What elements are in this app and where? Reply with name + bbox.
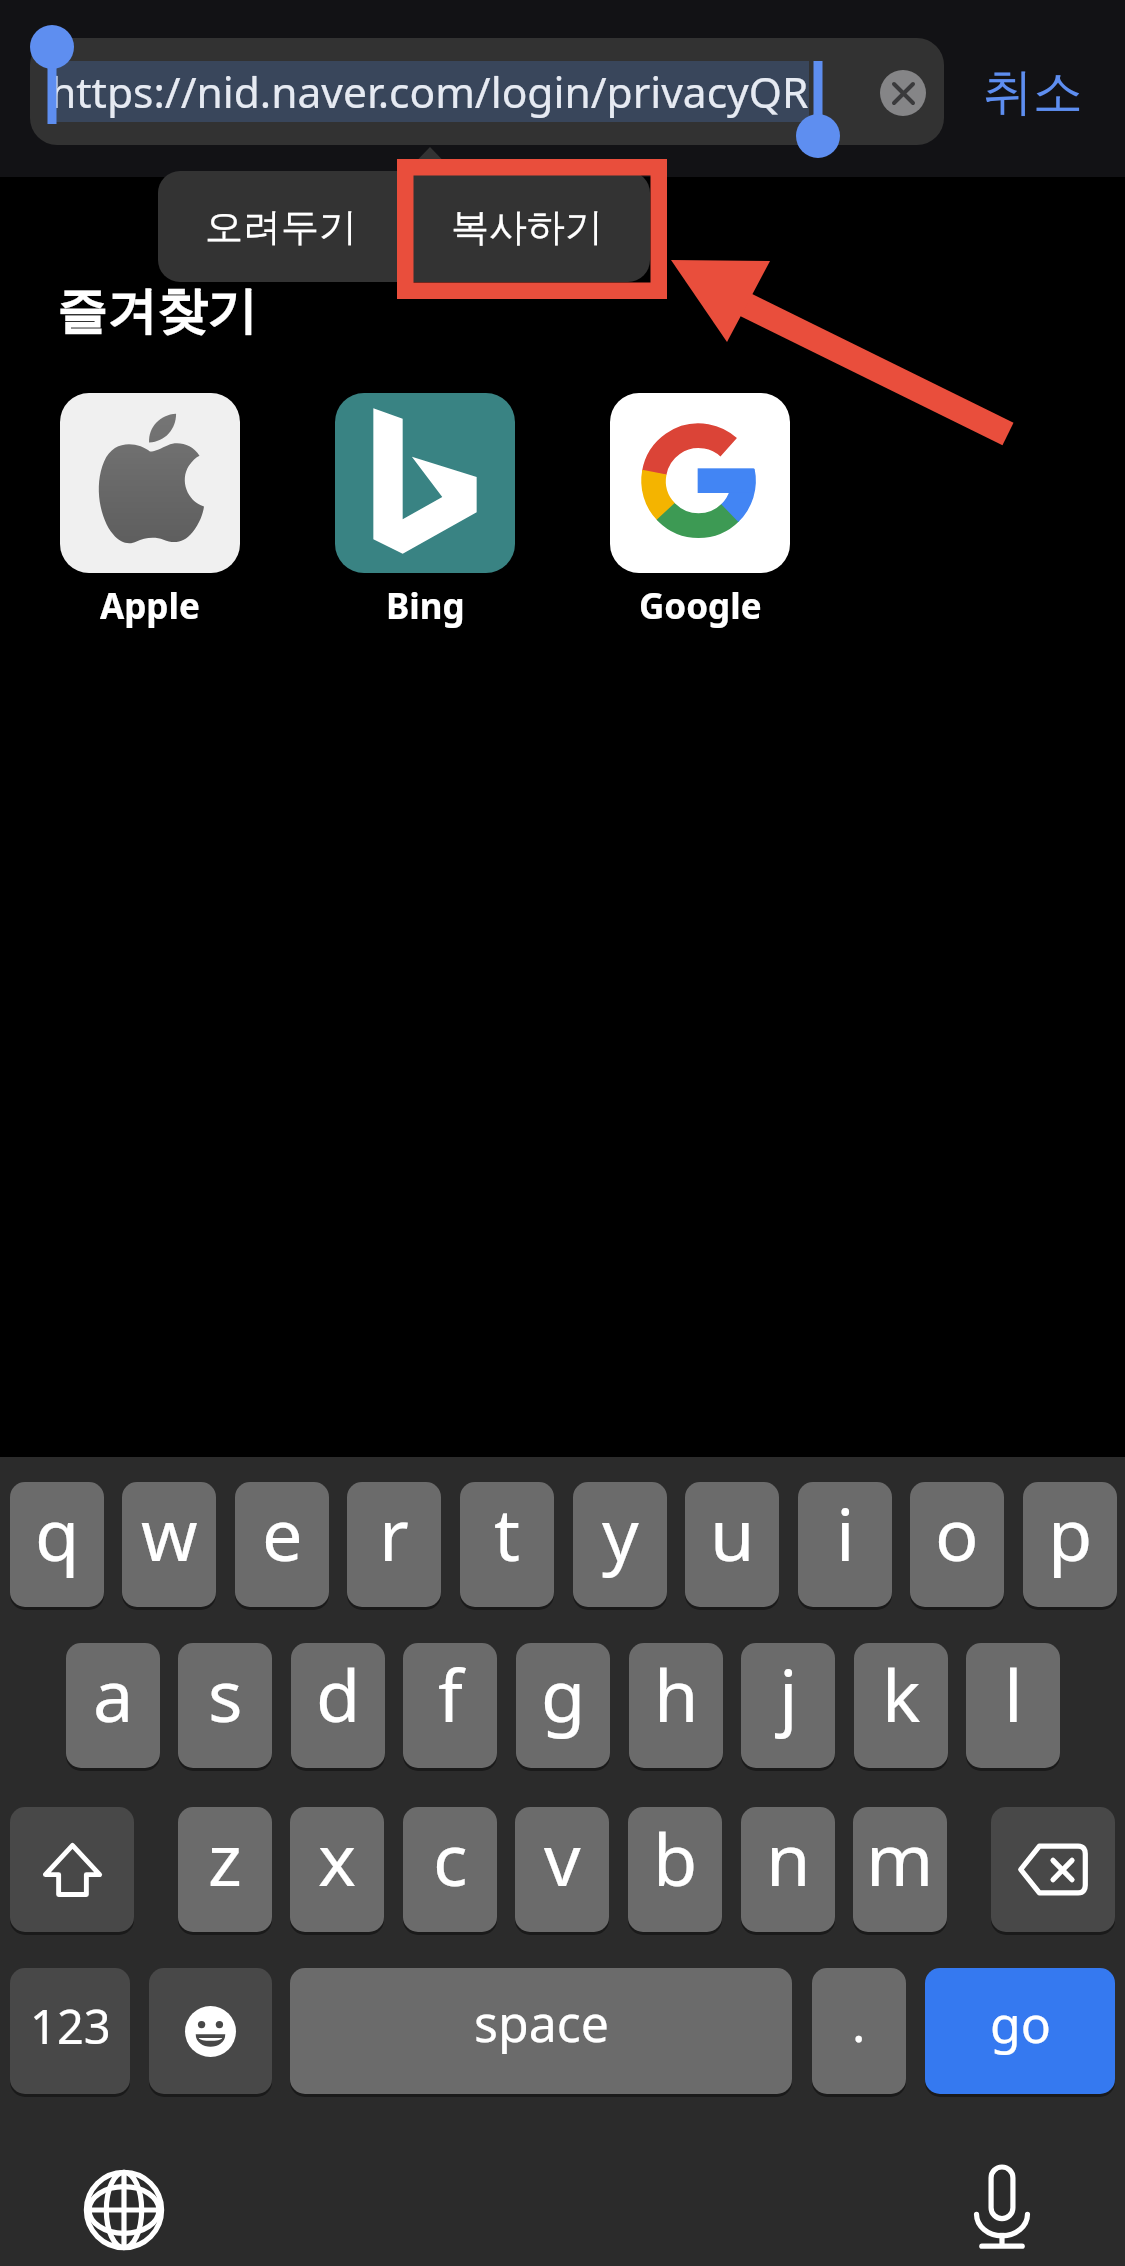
- staticText: space: [474, 1989, 609, 2057]
- staticText: 오려두기: [205, 203, 357, 251]
- button[interactable]: 취소: [982, 58, 1084, 126]
- staticText: 즐겨찾기: [57, 280, 257, 343]
- staticText: u: [710, 1484, 755, 1582]
- staticText: g: [541, 1645, 586, 1743]
- staticText: go: [990, 1990, 1051, 2058]
- button[interactable]: https://nid.naver.com/login/privacyQR: [30, 38, 944, 145]
- staticText: l: [1004, 1645, 1023, 1743]
- button[interactable]: m: [853, 1807, 947, 1932]
- staticText: w: [141, 1484, 198, 1582]
- button[interactable]: q: [10, 1482, 104, 1607]
- staticText: i: [836, 1484, 855, 1582]
- staticText: q: [35, 1484, 80, 1582]
- button[interactable]: p: [1023, 1482, 1117, 1607]
- button[interactable]: go: [925, 1968, 1115, 2094]
- button[interactable]: g: [516, 1643, 610, 1768]
- button[interactable]: v: [515, 1807, 609, 1932]
- button[interactable]: w: [122, 1482, 216, 1607]
- staticText: Apple: [100, 582, 200, 630]
- button[interactable]: b: [628, 1807, 722, 1932]
- button[interactable]: a: [66, 1643, 160, 1768]
- button[interactable]: s: [178, 1643, 272, 1768]
- staticText: 취소: [983, 61, 1083, 124]
- button[interactable]: Delete: [991, 1807, 1115, 1932]
- button[interactable]: u: [685, 1482, 779, 1607]
- button[interactable]: .: [812, 1968, 906, 2094]
- button[interactable]: x: [290, 1807, 384, 1932]
- button[interactable]: space: [290, 1968, 792, 2094]
- button[interactable]: 123: [10, 1968, 130, 2094]
- staticText: y: [602, 1484, 639, 1582]
- button[interactable]: c: [403, 1807, 497, 1932]
- staticText: x: [318, 1809, 357, 1907]
- button[interactable]: t: [460, 1482, 554, 1607]
- button[interactable]: z: [178, 1807, 272, 1932]
- staticText: .: [852, 1989, 866, 2057]
- staticText: v: [544, 1809, 581, 1907]
- staticText: https://nid.naver.com/login/privacyQR: [50, 63, 809, 121]
- button[interactable]: e: [235, 1482, 329, 1607]
- button[interactable]: Shift: [10, 1807, 134, 1932]
- staticText: d: [316, 1645, 361, 1743]
- staticText: c: [433, 1809, 468, 1907]
- staticText: h: [654, 1645, 699, 1743]
- staticText: j: [779, 1645, 798, 1743]
- button[interactable]: r: [347, 1482, 441, 1607]
- staticText: 복사하기: [451, 203, 603, 251]
- staticText: a: [93, 1645, 134, 1743]
- button[interactable]: Bing: [335, 393, 515, 573]
- staticText: n: [766, 1809, 811, 1907]
- staticText: e: [262, 1484, 303, 1582]
- staticText: Google: [639, 582, 762, 630]
- button[interactable]: o: [910, 1482, 1004, 1607]
- button[interactable]: h: [629, 1643, 723, 1768]
- staticText: b: [653, 1809, 698, 1907]
- staticText: t: [494, 1484, 520, 1582]
- staticText: p: [1048, 1484, 1093, 1582]
- button[interactable]: f: [403, 1643, 497, 1768]
- button[interactable]: y: [573, 1482, 667, 1607]
- staticText: r: [379, 1484, 409, 1582]
- button[interactable]: Dictation: [958, 2162, 1046, 2252]
- button[interactable]: Clear text: [880, 70, 926, 116]
- button[interactable]: l: [966, 1643, 1060, 1768]
- button[interactable]: 복사하기: [404, 171, 650, 282]
- button[interactable]: j: [741, 1643, 835, 1768]
- staticText: Bing: [386, 582, 465, 630]
- staticText: s: [208, 1645, 243, 1743]
- staticText: k: [882, 1645, 921, 1743]
- button[interactable]: Change keyboard: [80, 2166, 168, 2254]
- staticText: z: [208, 1809, 242, 1907]
- button[interactable]: Apple: [60, 393, 240, 573]
- button[interactable]: 오려두기: [158, 171, 404, 282]
- staticText: o: [935, 1484, 979, 1582]
- button[interactable]: Emoji: [149, 1968, 272, 2094]
- staticText: f: [438, 1645, 463, 1743]
- button[interactable]: n: [741, 1807, 835, 1932]
- button[interactable]: k: [854, 1643, 948, 1768]
- staticText: m: [866, 1809, 934, 1907]
- button[interactable]: i: [798, 1482, 892, 1607]
- button[interactable]: d: [291, 1643, 385, 1768]
- staticText: 123: [30, 1994, 111, 2058]
- button[interactable]: Google: [610, 393, 790, 573]
